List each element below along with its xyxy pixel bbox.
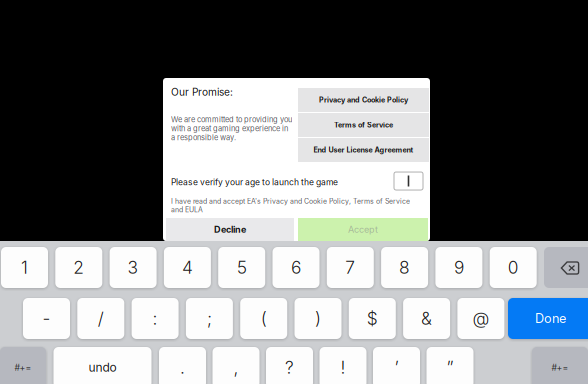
staticText: , — [233, 357, 238, 378]
button[interactable]: Age entry field — [394, 172, 423, 190]
staticText: & — [421, 308, 432, 329]
staticText: a responsible way. — [171, 133, 236, 142]
button[interactable]: End User License Agreement — [298, 138, 429, 162]
button[interactable]: Terms of Service — [298, 113, 429, 137]
staticText: ! — [340, 357, 345, 378]
button[interactable]: 9 — [435, 247, 482, 288]
button[interactable]: Done — [508, 298, 588, 339]
staticText: ; — [207, 308, 212, 329]
button[interactable]: . — [159, 347, 206, 384]
staticText: ( — [261, 308, 267, 329]
button[interactable]: - — [23, 298, 70, 339]
button[interactable]: #+= — [0, 347, 46, 384]
button[interactable]: 3 — [110, 247, 157, 288]
staticText: 5 — [237, 257, 247, 278]
staticText: ? — [285, 357, 294, 378]
staticText: / — [98, 308, 104, 329]
staticText: 7 — [345, 257, 355, 278]
staticText: 1 — [21, 257, 28, 278]
staticText: Privacy and Cookie Policy — [319, 96, 408, 104]
staticText: We are committed to providing you — [171, 115, 292, 124]
button[interactable]: Privacy and Cookie Policy — [298, 88, 429, 112]
button[interactable]: @ — [457, 298, 504, 339]
button[interactable]: undo — [53, 347, 151, 384]
staticText: . — [180, 357, 185, 378]
staticText: End User License Agreement — [313, 146, 413, 154]
staticText: 2 — [73, 257, 84, 278]
button[interactable]: 2 — [55, 247, 102, 288]
button[interactable]: 1 — [1, 247, 48, 288]
staticText: 9 — [454, 257, 464, 278]
button[interactable]: ” — [426, 347, 473, 384]
staticText: Our Promise: — [171, 86, 233, 98]
staticText: 0 — [508, 257, 519, 278]
staticText: ” — [446, 357, 453, 378]
button[interactable]: ; — [186, 298, 233, 339]
staticText: #+= — [551, 362, 568, 373]
staticText: $ — [367, 308, 378, 329]
button[interactable]: / — [77, 298, 124, 339]
staticText: 6 — [291, 257, 301, 278]
staticText: #+= — [14, 362, 31, 373]
button[interactable]: 4 — [164, 247, 211, 288]
button[interactable]: & — [403, 298, 450, 339]
staticText: Accept — [348, 224, 378, 235]
button[interactable]: ( — [240, 298, 287, 339]
button[interactable]: 7 — [327, 247, 374, 288]
staticText: 8 — [399, 257, 410, 278]
button[interactable]: , — [212, 347, 259, 384]
staticText: and EULA — [171, 205, 203, 214]
button[interactable]: 0 — [490, 247, 537, 288]
button[interactable]: Accept — [298, 218, 428, 241]
button[interactable]: : — [132, 298, 179, 339]
staticText: I have read and accept EA's Privacy and … — [171, 197, 410, 205]
button[interactable]: $ — [349, 298, 396, 339]
staticText: @ — [472, 308, 489, 329]
button[interactable]: Decline — [166, 218, 294, 241]
staticText: Terms of Service — [334, 121, 393, 129]
staticText: Decline — [214, 224, 246, 235]
staticText: Please verify your age to launch the gam… — [171, 177, 338, 187]
button[interactable]: ? — [266, 347, 313, 384]
staticText: : — [153, 308, 158, 329]
button[interactable]: 6 — [272, 247, 319, 288]
button[interactable]: 5 — [218, 247, 265, 288]
button[interactable]: ’ — [373, 347, 420, 384]
staticText: 3 — [128, 257, 139, 278]
button[interactable]: #+= — [532, 347, 588, 384]
staticText: 4 — [182, 257, 193, 278]
button[interactable]: ! — [319, 347, 366, 384]
staticText: ’ — [394, 357, 398, 378]
staticText: - — [42, 308, 50, 329]
button[interactable]: 8 — [381, 247, 428, 288]
staticText: Done — [535, 311, 566, 326]
staticText: ) — [315, 308, 321, 329]
staticText: with a great gaming experience in — [171, 124, 288, 133]
staticText: undo — [88, 360, 116, 375]
button[interactable]: ) — [294, 298, 341, 339]
button[interactable]: Delete — [544, 247, 588, 288]
